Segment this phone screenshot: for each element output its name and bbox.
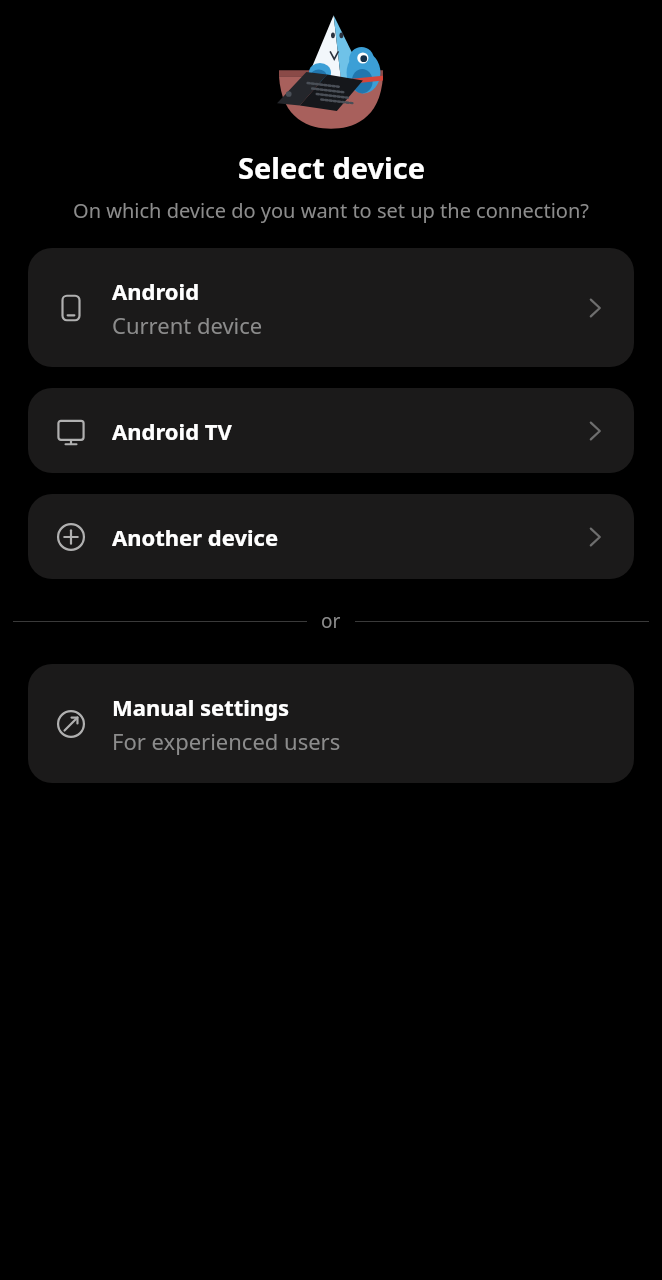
staticText: Another device (112, 522, 279, 552)
staticText: On which device do you want to set up th… (34, 197, 628, 224)
button[interactable]: Android (28, 248, 634, 367)
staticText: For experienced users (112, 726, 341, 756)
staticText: Android TV (112, 416, 232, 446)
button[interactable]: Android TV (28, 388, 634, 473)
staticText: Manual settings (112, 692, 290, 722)
staticText: Android (112, 276, 200, 306)
staticText: Current device (112, 310, 263, 340)
staticText: or (321, 608, 341, 634)
button[interactable]: Manual settings (28, 664, 634, 783)
staticText: Select device (238, 148, 425, 187)
button[interactable]: Another device (28, 494, 634, 579)
